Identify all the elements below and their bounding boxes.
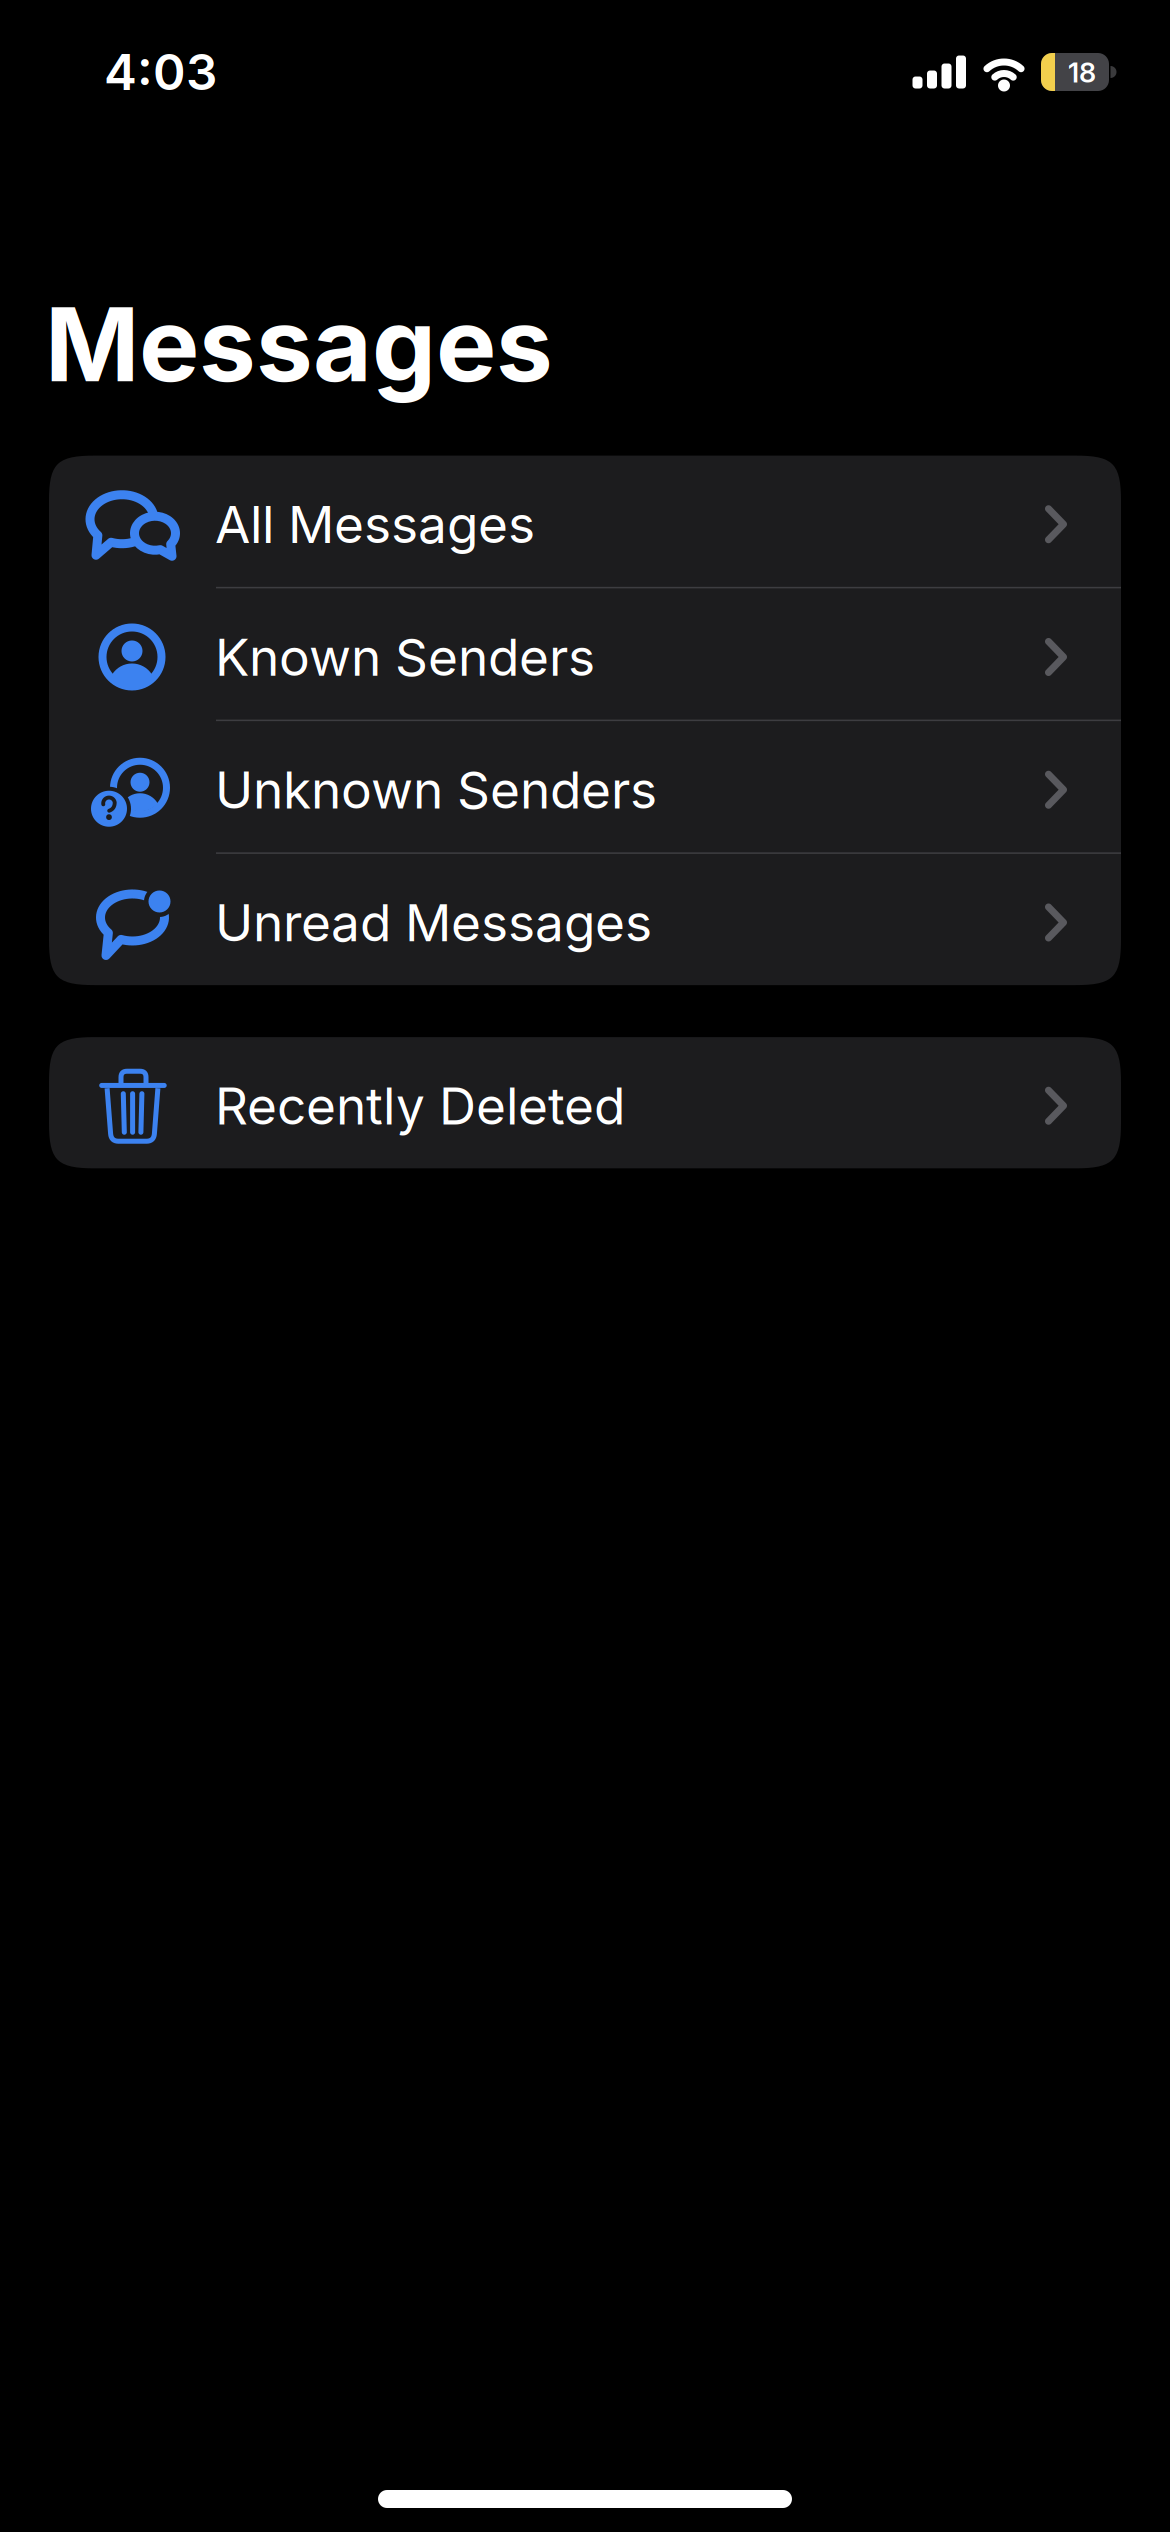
staticText: Known Senders bbox=[215, 626, 595, 688]
staticText: Recently Deleted bbox=[215, 1075, 625, 1137]
staticText: 4:03 bbox=[104, 42, 217, 102]
button[interactable]: Unknown Senders bbox=[49, 721, 1121, 852]
staticText: Messages bbox=[45, 283, 553, 406]
staticText: Unknown Senders bbox=[215, 759, 657, 821]
button[interactable]: All Messages bbox=[49, 456, 1121, 587]
button[interactable]: Recently Deleted bbox=[49, 1037, 1121, 1168]
staticText: All Messages bbox=[215, 493, 535, 555]
staticText: 18 bbox=[1068, 56, 1096, 89]
button[interactable]: Known Senders bbox=[49, 588, 1121, 720]
staticText: Unread Messages bbox=[215, 891, 652, 953]
button[interactable]: Unread Messages bbox=[49, 854, 1121, 985]
